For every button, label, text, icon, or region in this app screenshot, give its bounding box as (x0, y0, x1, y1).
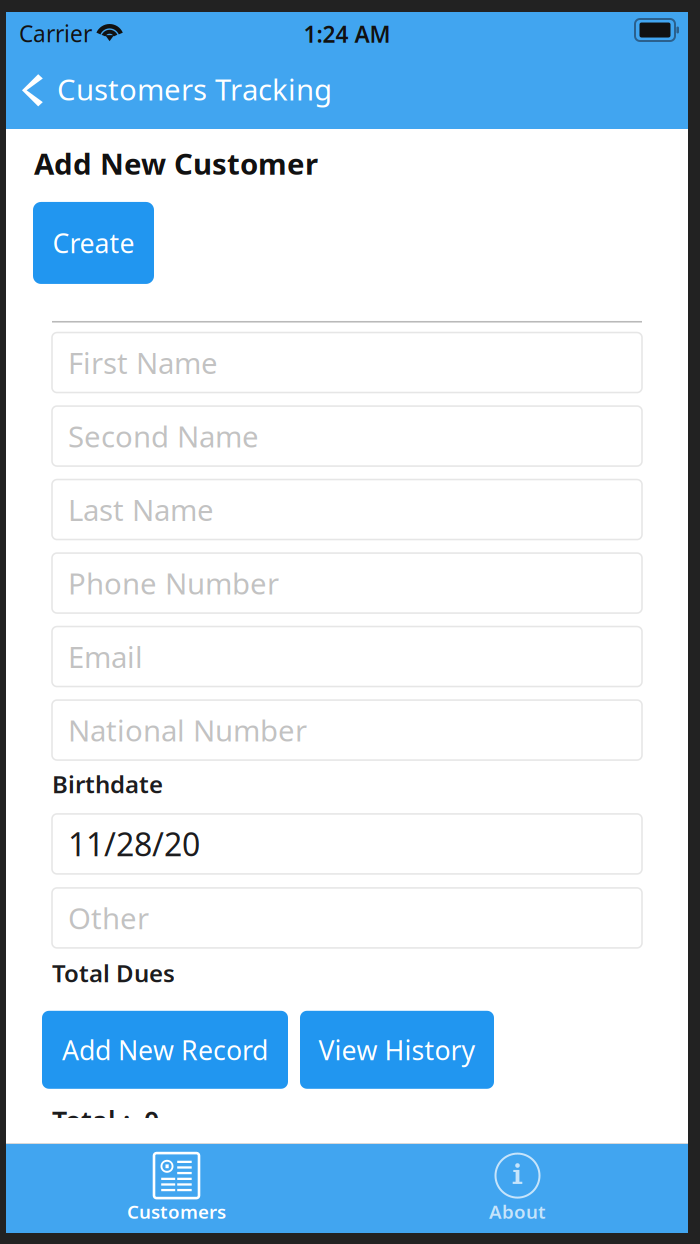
staticText: Last Name (68, 490, 214, 529)
staticText: Add New Record (62, 1032, 268, 1067)
staticText: Carrier (19, 18, 92, 48)
staticText: First Name (68, 343, 218, 382)
staticText: About (489, 1199, 546, 1224)
staticText: Birthdate (52, 768, 163, 800)
staticText: Total : 0 (52, 1103, 159, 1138)
staticText: Add New Customer (34, 144, 318, 183)
staticText: National Number (68, 711, 307, 750)
button[interactable]: Customers Tracking (6, 60, 346, 129)
button[interactable]: View History (300, 1011, 494, 1089)
button[interactable]: Create (33, 202, 154, 284)
button[interactable]: Customers (6, 1144, 347, 1233)
staticText: View History (318, 1032, 475, 1067)
button[interactable]: About (347, 1144, 688, 1233)
staticText: Customers Tracking (57, 69, 332, 108)
staticText: Total Dues (52, 957, 175, 989)
staticText: Phone Number (68, 564, 279, 603)
staticText: 1:24 AM (303, 19, 390, 49)
staticText: 11/28/20 (68, 823, 200, 865)
staticText: Other (68, 898, 149, 937)
button[interactable]: Add New Record (42, 1011, 288, 1089)
staticText: Customers (127, 1199, 226, 1224)
staticText: Create (52, 225, 134, 261)
staticText: Email (68, 637, 143, 676)
staticText: Second Name (68, 417, 259, 456)
